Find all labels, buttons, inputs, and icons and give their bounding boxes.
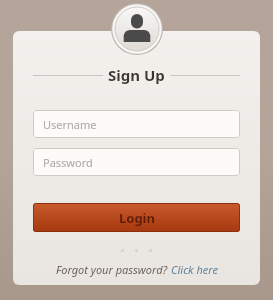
button[interactable]: Password bbox=[33, 148, 240, 176]
staticText: Click here bbox=[171, 262, 218, 277]
button[interactable]: Click here bbox=[171, 262, 218, 277]
button[interactable]: Username bbox=[33, 110, 240, 138]
staticText: Login bbox=[119, 209, 155, 227]
other: Profile avatar bbox=[111, 3, 163, 55]
staticText: Password bbox=[43, 155, 93, 170]
staticText: Forgot your password? bbox=[56, 262, 171, 277]
staticText: Sign Up bbox=[108, 65, 165, 85]
staticText: Username bbox=[43, 117, 97, 132]
button[interactable]: Login bbox=[33, 203, 240, 232]
